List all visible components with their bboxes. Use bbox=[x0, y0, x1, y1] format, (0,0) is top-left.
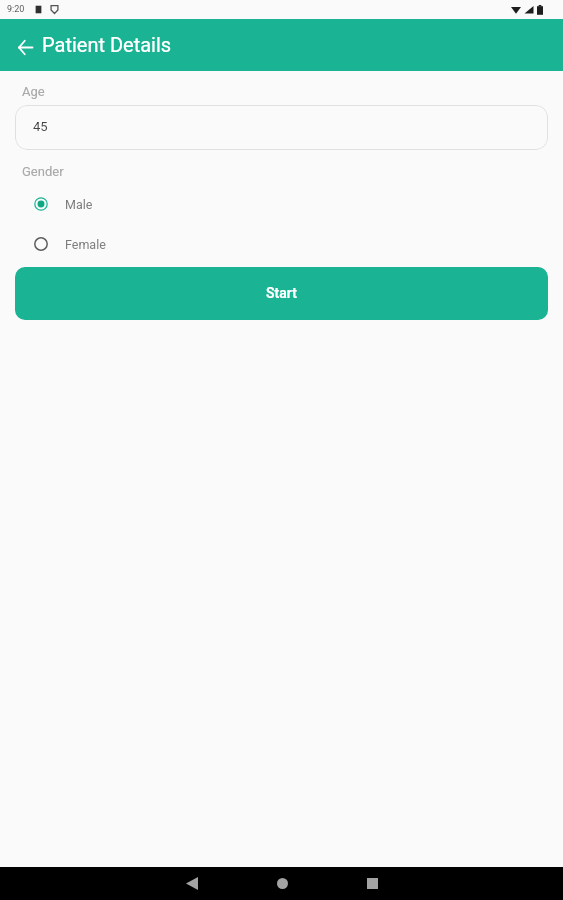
staticText: 9:20 bbox=[7, 4, 25, 15]
staticText: Male bbox=[65, 197, 93, 212]
button[interactable]: Male bbox=[0, 184, 563, 224]
button[interactable]: 45 bbox=[15, 105, 548, 150]
button[interactable]: Back bbox=[9, 29, 41, 61]
staticText: 45 bbox=[33, 119, 48, 134]
staticText: Start bbox=[266, 285, 297, 301]
staticText: Age bbox=[22, 84, 45, 99]
button[interactable]: Recents bbox=[350, 867, 394, 900]
button[interactable]: Start bbox=[15, 267, 548, 320]
staticText: Patient Details bbox=[42, 33, 172, 56]
button[interactable]: Back bbox=[170, 867, 214, 900]
staticText: Female bbox=[65, 237, 106, 252]
button[interactable]: Female bbox=[0, 224, 563, 264]
staticText: Gender bbox=[22, 164, 64, 179]
button[interactable]: Home bbox=[260, 867, 304, 900]
